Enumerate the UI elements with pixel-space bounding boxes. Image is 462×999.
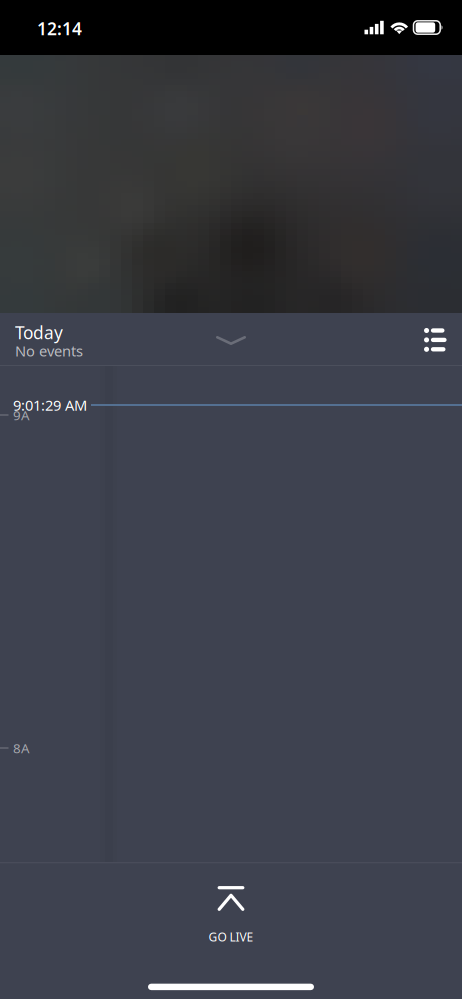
button[interactable]: Collapse: [202, 322, 260, 359]
staticText: 9:01:29 AM: [13, 395, 87, 415]
button[interactable]: GO LIVE: [0, 862, 462, 999]
staticText: No events: [15, 341, 83, 360]
staticText: 8A: [13, 739, 30, 757]
staticText: GO LIVE: [208, 929, 253, 945]
staticText: 9A: [13, 406, 30, 424]
button[interactable]: Events list: [411, 315, 459, 365]
staticText: Today: [15, 321, 63, 344]
staticText: 12:14: [37, 17, 82, 40]
